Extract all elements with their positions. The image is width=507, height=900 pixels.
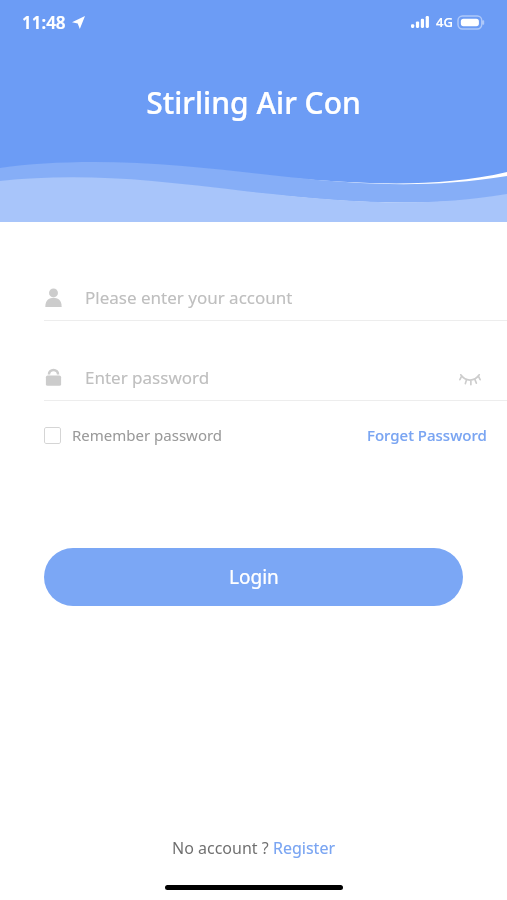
button[interactable]: Please enter your account [0,274,507,320]
button[interactable]: Remember password [44,419,223,451]
staticText: Enter password [85,366,210,389]
staticText: Forget Password [367,425,487,445]
button[interactable]: Login [44,548,463,606]
staticText: No account ? [172,837,273,859]
button[interactable]: Register [273,837,336,859]
staticText: Login [229,564,279,590]
staticText: Stirling Air Con [146,82,361,123]
button[interactable]: Enter password [0,354,507,400]
button[interactable]: Show password [455,362,485,392]
staticText: 4G [436,13,453,31]
staticText: Register [273,837,336,859]
staticText: 11:48 [22,11,66,34]
staticText: Remember password [72,425,223,445]
staticText: Please enter your account [85,286,293,309]
button[interactable]: Forget Password [367,419,487,451]
